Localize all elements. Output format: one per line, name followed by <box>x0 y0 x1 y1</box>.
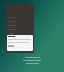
button[interactable] <box>6 4 34 53</box>
button[interactable] <box>7 35 33 51</box>
